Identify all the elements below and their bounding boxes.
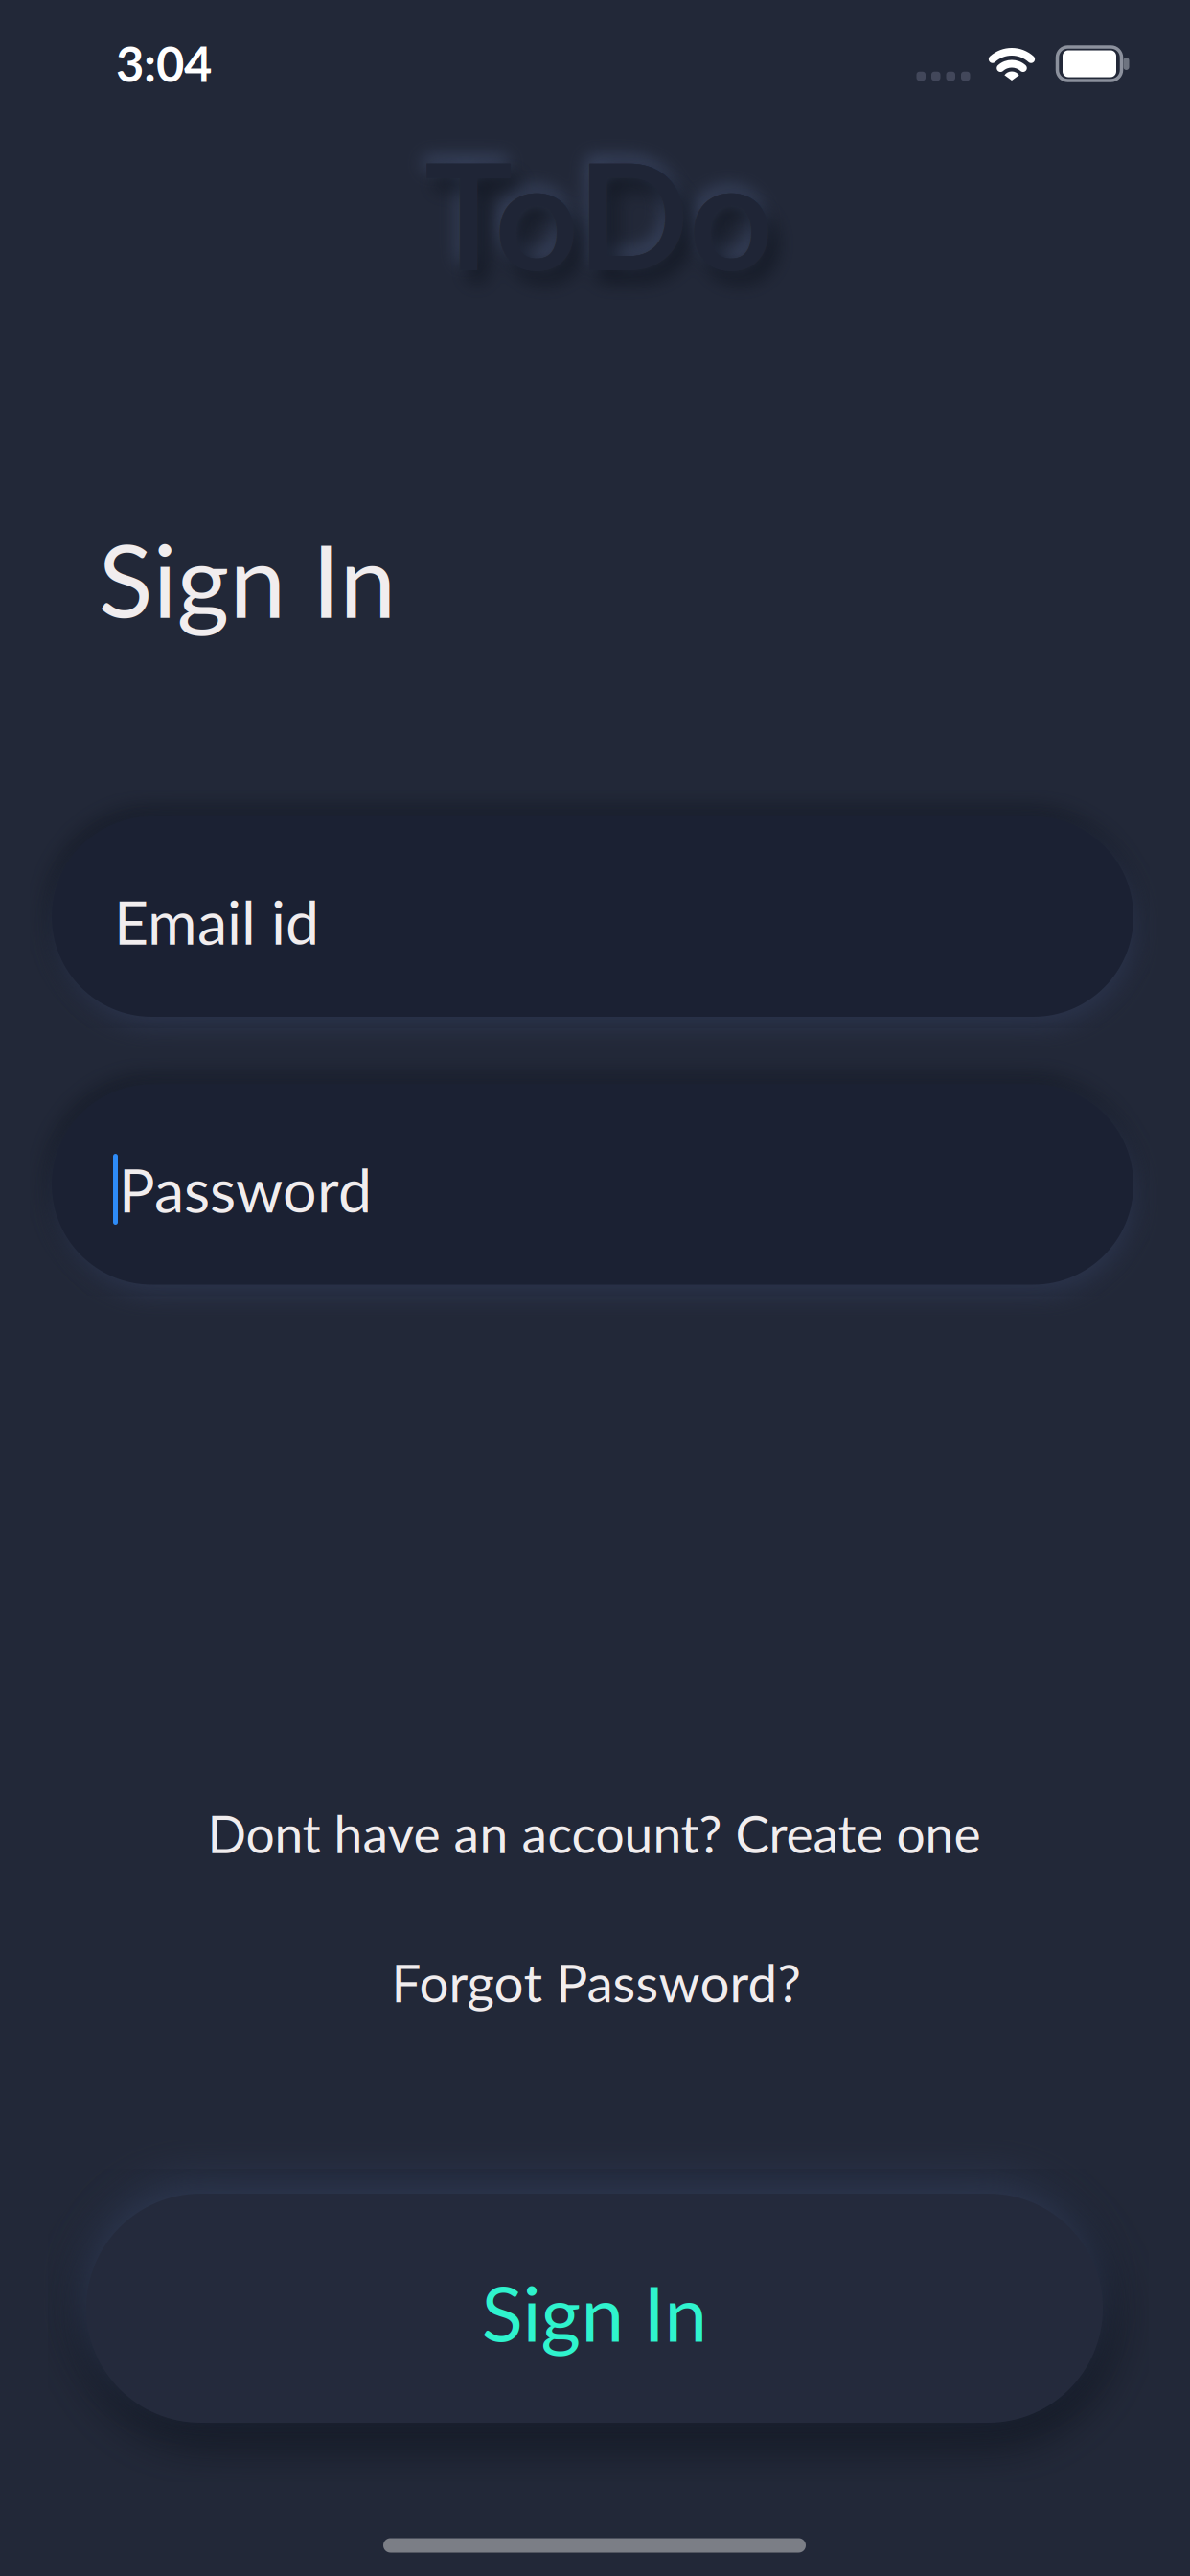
staticText: ToDo — [424, 124, 773, 302]
staticText: ToDo — [424, 124, 773, 302]
button[interactable]: Forgot Password? — [391, 1950, 801, 2013]
button[interactable]: Email id — [52, 816, 1133, 1017]
button[interactable]: Dont have an account? Create one — [207, 1803, 981, 1864]
staticText: ToDo — [424, 124, 773, 302]
staticText: Sign In — [98, 518, 396, 639]
staticText: Forgot Password? — [391, 1950, 801, 2013]
button[interactable]: Sign In — [86, 2194, 1103, 2423]
staticText: Dont have an account? Create one — [207, 1803, 981, 1864]
staticText: Email id — [114, 885, 319, 957]
staticText: Password — [119, 1153, 372, 1225]
staticText: 3:04 — [116, 34, 212, 92]
staticText: Sign In — [481, 2266, 708, 2358]
button[interactable]: Password — [52, 1084, 1133, 1285]
